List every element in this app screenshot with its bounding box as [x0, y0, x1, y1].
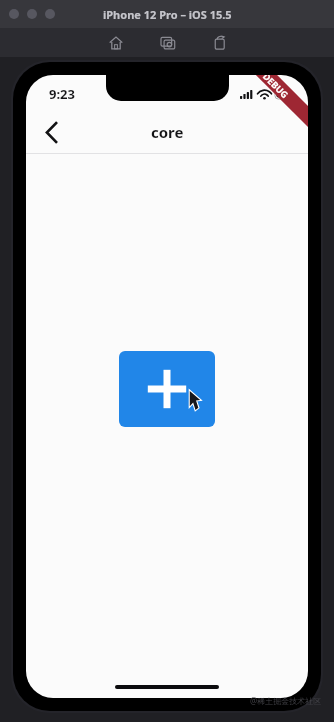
staticText: core [151, 122, 184, 142]
button[interactable]: Add [119, 351, 215, 427]
button[interactable]: Window control [27, 9, 37, 19]
button[interactable]: Screenshot [157, 32, 179, 54]
button[interactable]: Rotate [209, 32, 231, 54]
button[interactable]: Home [105, 32, 127, 54]
staticText: DEBUG [261, 75, 291, 100]
staticText: iPhone 12 Pro – iOS 15.5 [103, 7, 232, 22]
button[interactable]: Back [32, 113, 70, 151]
button[interactable]: Window control [45, 9, 55, 19]
button[interactable]: Window control [9, 9, 19, 19]
staticText: 9:23 [49, 85, 75, 103]
staticText: @稀土掘金技术社区 [250, 695, 322, 706]
